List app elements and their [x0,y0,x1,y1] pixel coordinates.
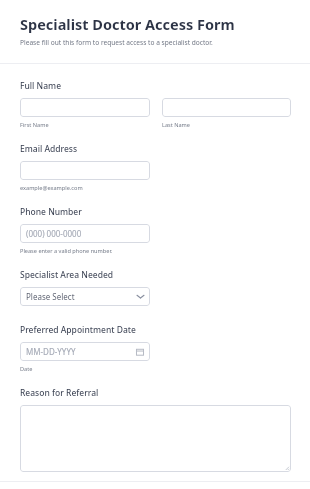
staticText: Please enter a valid phone number. [20,247,113,255]
button[interactable]: Reason for Referral [20,405,291,472]
staticText: Date [20,365,33,373]
staticText: First Name [20,121,49,129]
staticText: Phone Number [20,206,82,218]
button[interactable]: Last Name [162,98,291,117]
button[interactable]: Phone Number [20,224,150,243]
staticText: Please Select [26,291,75,302]
staticText: Email Address [20,143,78,155]
staticText: Preferred Appointment Date [20,324,136,336]
button[interactable]: Preferred Appointment Date [20,342,150,361]
staticText: MM-DD-YYYY [26,346,76,357]
button[interactable]: First Name [20,98,150,117]
staticText: Please fill out this form to request acc… [20,38,213,47]
button[interactable]: Email Address [20,161,150,180]
staticText: Specialist Doctor Access Form [20,14,235,34]
button[interactable]: Specialist Area Needed [20,287,150,306]
staticText: Specialist Area Needed [20,269,114,281]
staticText: Last Name [162,121,190,129]
staticText: example@example.com [20,184,83,192]
staticText: Reason for Referral [20,387,99,399]
staticText: (000) 000-0000 [26,228,82,239]
staticText: Full Name [20,80,62,92]
